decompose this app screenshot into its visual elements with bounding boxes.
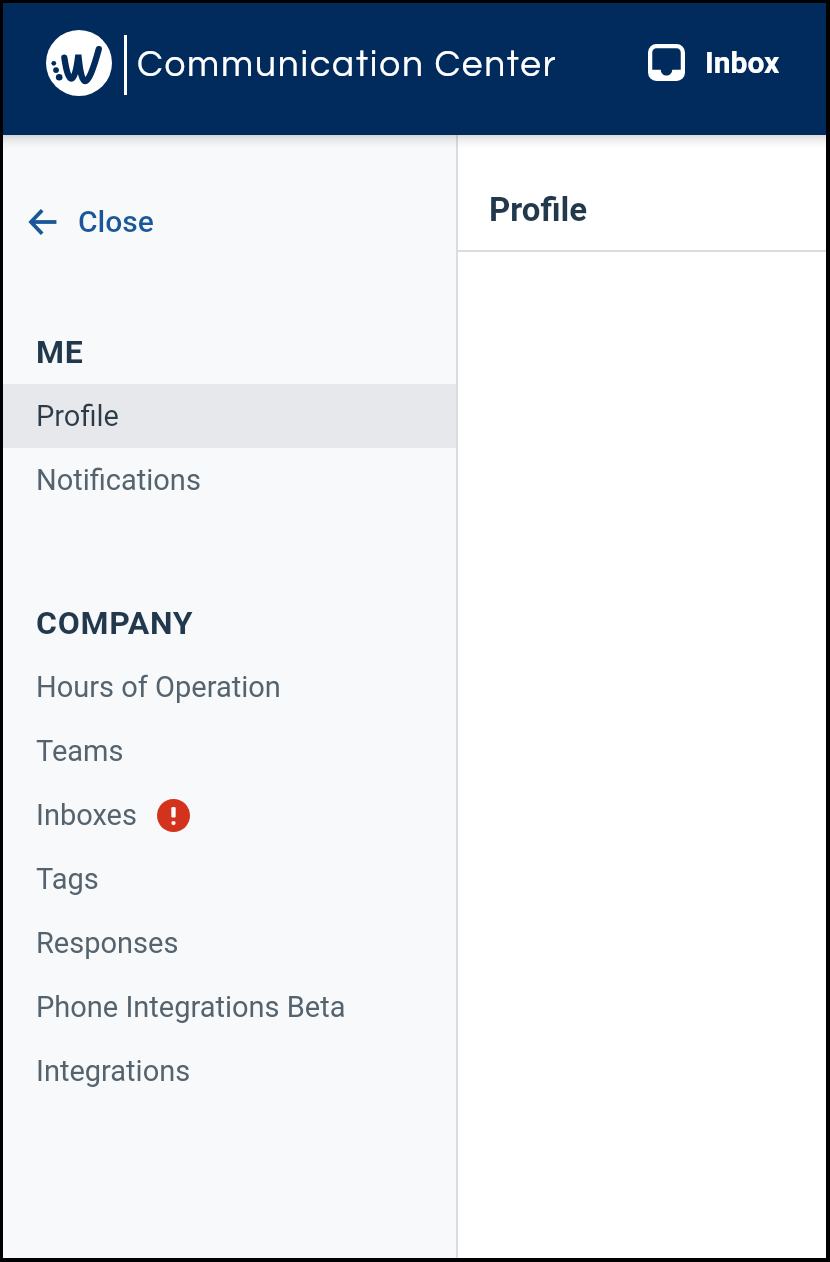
button[interactable]: Profile [3,384,456,448]
staticText: Close [78,204,154,239]
staticText: Notifications [36,463,201,497]
staticText: Integrations [36,1054,191,1088]
staticText: Communication Center [137,46,558,84]
staticText: Profile [36,399,119,433]
button[interactable]: Tags [3,847,456,911]
staticText: Inbox [705,45,780,80]
button[interactable]: Home [46,30,112,96]
staticText: Responses [36,926,179,960]
staticText: Tags [36,862,99,896]
staticText: Phone Integrations Beta [36,990,346,1024]
button[interactable]: Teams [3,719,456,783]
staticText: ME [36,333,84,371]
staticText: Inboxes [36,798,137,832]
button[interactable]: Inboxes [3,783,456,847]
staticText: Teams [36,734,124,768]
button[interactable]: Inbox [640,36,788,89]
button[interactable]: Responses [3,911,456,975]
button[interactable]: Phone Integrations Beta [3,975,456,1039]
staticText: Hours of Operation [36,670,281,704]
button[interactable]: Hours of Operation [3,655,456,719]
button[interactable]: Close [17,192,178,251]
staticText: Profile [489,190,588,229]
staticText: COMPANY [36,604,194,642]
button[interactable]: Integrations [3,1039,456,1103]
button[interactable]: Notifications [3,448,456,512]
